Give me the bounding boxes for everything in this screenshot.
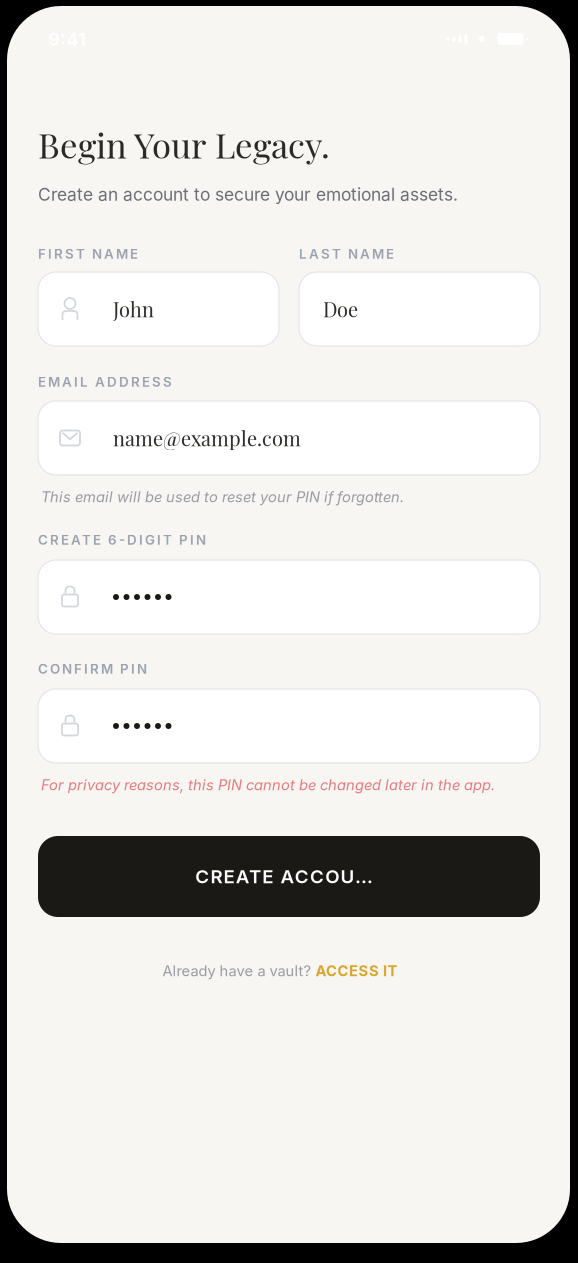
staticText: 9:41 [48, 28, 86, 50]
staticText: This email will be used to reset your PI… [41, 488, 404, 506]
staticText: LAST NAME [299, 246, 394, 262]
staticText: ACCESS IT [315, 962, 397, 980]
staticText: CONFIRM PIN [38, 661, 147, 677]
staticText: name@example.com [113, 425, 301, 451]
staticText: CREATE ACCOUNT [195, 865, 383, 888]
button[interactable]: ACCESS IT [315, 962, 415, 980]
staticText: Doe [323, 296, 358, 322]
staticText: For privacy reasons, this PIN cannot be … [41, 776, 495, 794]
staticText: Create an account to secure your emotion… [38, 184, 458, 205]
staticText: CREATE 6-DIGIT PIN [38, 532, 206, 548]
staticText: EMAIL ADDRESS [38, 374, 172, 390]
button[interactable]: CREATE ACCOUNT [38, 836, 540, 917]
staticText: Already have a vault? [162, 962, 310, 980]
staticText: John [113, 296, 154, 322]
staticText: Begin Your Legacy. [38, 121, 330, 167]
staticText: FIRST NAME [38, 246, 138, 262]
